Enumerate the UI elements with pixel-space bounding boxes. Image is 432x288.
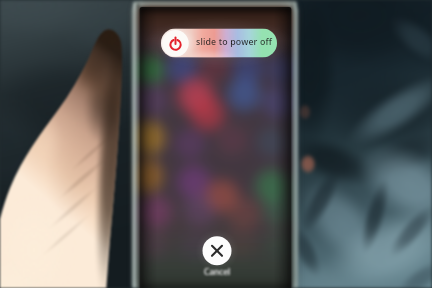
staticText: Cancel [198,266,236,279]
staticText: slide to power off [186,36,282,52]
button[interactable]: Cancel [202,236,232,266]
button[interactable]: slide to power off [161,29,277,58]
